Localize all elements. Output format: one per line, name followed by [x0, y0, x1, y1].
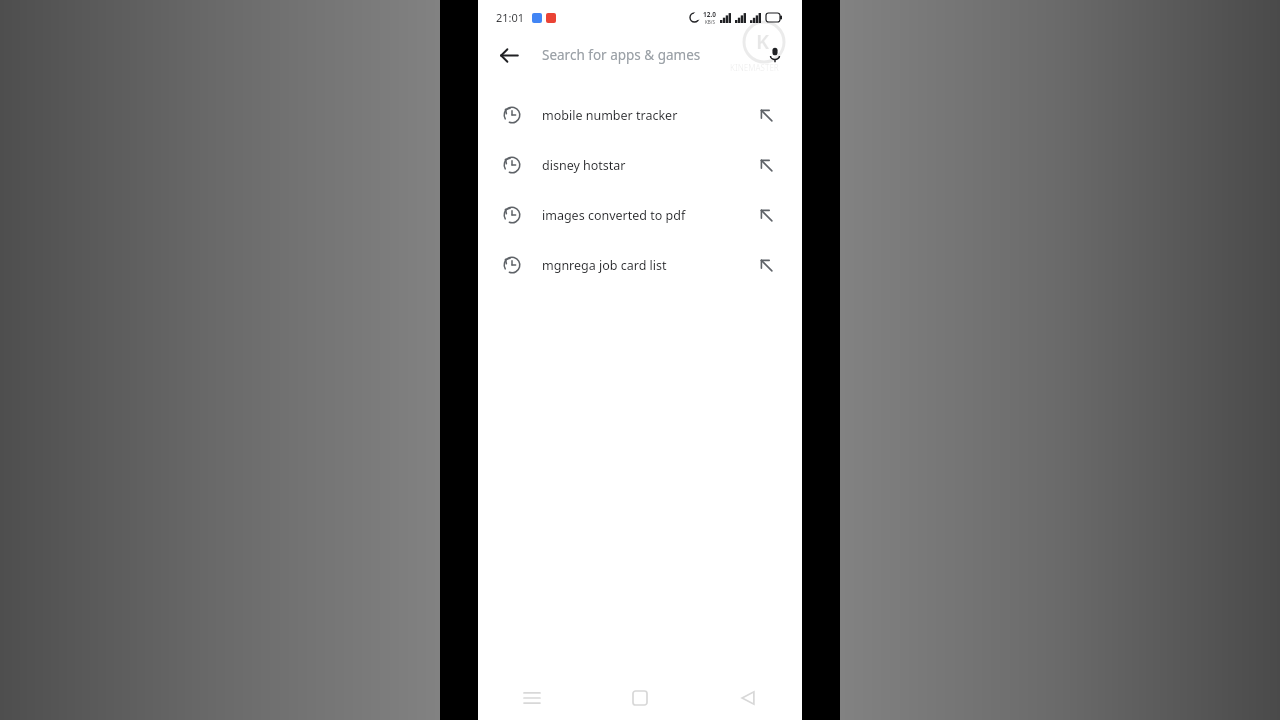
staticText: KB/S: [705, 19, 715, 25]
button[interactable]: Voice search: [758, 38, 792, 72]
staticText: mobile number tracker: [542, 107, 678, 124]
staticText: 21:01: [496, 10, 525, 25]
button[interactable]: mgnrega job card list: [478, 240, 802, 290]
button[interactable]: Insert suggestion: [759, 258, 774, 273]
staticText: K: [756, 28, 770, 55]
staticText: Search for apps & games: [542, 46, 701, 64]
staticText: images converted to pdf: [542, 207, 686, 224]
staticText: 12.0: [703, 10, 716, 19]
button[interactable]: Insert suggestion: [759, 208, 774, 223]
button[interactable]: disney hotstar: [478, 140, 802, 190]
button[interactable]: Back: [492, 38, 526, 72]
button[interactable]: Back: [694, 675, 802, 720]
button[interactable]: mobile number tracker: [478, 90, 802, 140]
button[interactable]: Home: [586, 675, 694, 720]
staticText: KINEMASTER: [730, 62, 779, 73]
button[interactable]: Back: [478, 34, 802, 76]
button[interactable]: images converted to pdf: [478, 190, 802, 240]
button[interactable]: Insert suggestion: [759, 158, 774, 173]
button[interactable]: Insert suggestion: [759, 108, 774, 123]
staticText: mgnrega job card list: [542, 257, 667, 274]
button[interactable]: Recent apps: [478, 675, 586, 720]
staticText: disney hotstar: [542, 157, 626, 174]
